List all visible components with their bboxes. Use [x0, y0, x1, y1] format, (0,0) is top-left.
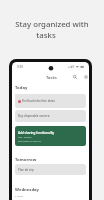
- button[interactable]: Buy disposable camera: [15, 110, 86, 122]
- staticText: Find bachelor/ette ideas: [22, 99, 55, 103]
- staticText: Due today at 3:00 PM: [18, 140, 42, 143]
- staticText: Wednesday: [15, 187, 39, 193]
- button[interactable]: Account: [83, 74, 89, 80]
- staticText: Plan ski trip: [18, 168, 34, 172]
- staticText: Today: [15, 85, 28, 91]
- button[interactable]: Find bachelor/ette ideas: [15, 94, 86, 108]
- button[interactable]: Add sharing functionality: [15, 126, 86, 146]
- staticText: Buy disposable camera: [18, 114, 50, 118]
- staticText: 2 tasks: [15, 194, 24, 197]
- button[interactable]: Search: [72, 74, 78, 80]
- button[interactable]: Plan ski trip: [15, 164, 86, 175]
- staticText: 4 tasks: [15, 92, 24, 95]
- staticText: 1 task: [15, 164, 22, 167]
- staticText: Tomorrow: [15, 157, 37, 163]
- staticText: Stay organized with: [0, 19, 104, 30]
- staticText: Tasks: [46, 75, 57, 81]
- staticText: Add sharing functionality: [18, 131, 55, 135]
- staticText: tasks: [0, 30, 98, 41]
- staticText: Dev · Design: [18, 136, 32, 139]
- staticText: 9:30: [17, 65, 23, 69]
